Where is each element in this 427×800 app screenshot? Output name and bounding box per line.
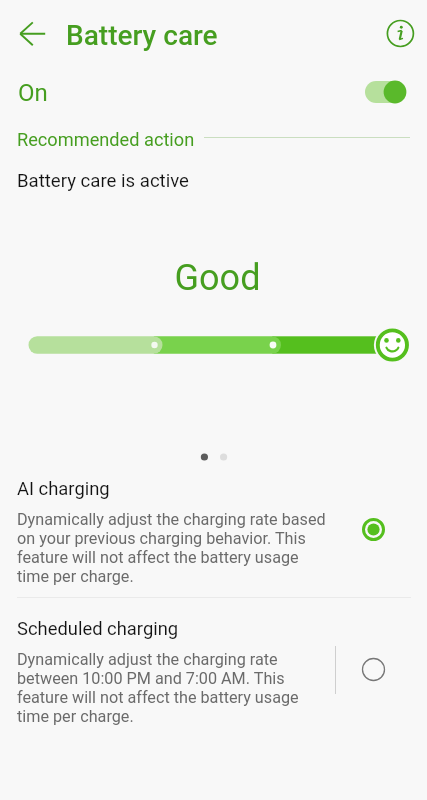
staticText: Dynamically adjust the charging rate bet… [17,650,299,726]
button[interactable]: On [0,72,427,114]
button[interactable]: Back [9,14,49,54]
button[interactable]: AI charging [0,476,427,600]
staticText: Battery care [66,19,218,52]
staticText: On [18,79,48,107]
staticText: Scheduled charging [17,618,179,640]
staticText: AI charging [17,478,110,500]
button[interactable]: Scheduled charging [0,616,427,740]
staticText: Battery care is active [17,170,189,192]
button[interactable]: Select AI charging [352,508,395,551]
staticText: Good [4,257,427,299]
button[interactable]: Information [382,15,419,52]
staticText: Dynamically adjust the charging rate bas… [17,510,326,586]
staticText: Recommended action [17,129,195,150]
button[interactable]: Select Scheduled charging [352,648,395,691]
